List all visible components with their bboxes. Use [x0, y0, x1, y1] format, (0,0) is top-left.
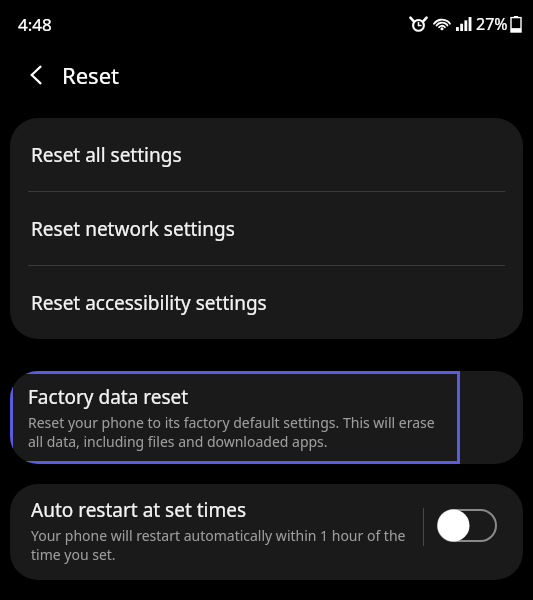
- button[interactable]: Reset all settings: [10, 118, 523, 191]
- staticText: Your phone will restart automatically wi…: [31, 526, 421, 564]
- staticText: Factory data reset: [28, 384, 189, 410]
- staticText: Reset: [62, 60, 119, 90]
- staticText: 27%: [476, 13, 508, 35]
- button[interactable]: Reset accessibility settings: [10, 266, 523, 339]
- button[interactable]: Factory data reset: [10, 371, 460, 464]
- button[interactable]: Auto restart at set times: [10, 484, 523, 580]
- button[interactable]: Back: [20, 58, 54, 92]
- button[interactable]: Reset network settings: [10, 192, 523, 265]
- staticText: Reset all settings: [31, 142, 182, 168]
- button[interactable]: Auto restart toggle, off: [436, 505, 498, 545]
- staticText: 4:48: [18, 13, 52, 36]
- staticText: Reset your phone to its factory default …: [28, 413, 442, 451]
- staticText: Reset accessibility settings: [31, 290, 267, 316]
- staticText: Auto restart at set times: [31, 497, 247, 523]
- staticText: Reset network settings: [31, 216, 235, 242]
